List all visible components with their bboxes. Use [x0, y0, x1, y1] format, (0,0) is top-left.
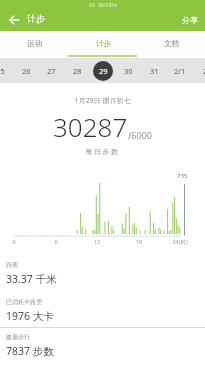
staticText: 运动: [27, 39, 42, 48]
staticText: 30: [124, 66, 133, 76]
staticText: 分享: [182, 15, 198, 25]
staticText: 33.37 千米: [6, 272, 57, 286]
button[interactable]: 计步: [69, 31, 137, 57]
staticText: 1976 大卡: [6, 309, 54, 323]
staticText: 0: [6, 238, 22, 245]
button[interactable]: 分享: [175, 11, 205, 29]
staticText: 计步: [27, 13, 45, 24]
button[interactable]: Back: [4, 10, 24, 30]
staticText: /6000: [128, 129, 152, 141]
button[interactable]: 2: [192, 58, 205, 83]
staticText: 2: [203, 66, 205, 76]
button[interactable]: 运动: [0, 31, 69, 57]
button[interactable]: 已消耗卡路里: [0, 291, 205, 327]
button[interactable]: 2/1: [167, 58, 193, 83]
staticText: 6: [48, 238, 64, 245]
button[interactable]: 27: [38, 58, 64, 83]
button[interactable]: 文档: [137, 31, 205, 57]
staticText: 30287: [53, 109, 128, 144]
button[interactable]: 健康步行: [0, 328, 205, 365]
staticText: 距离: [6, 261, 18, 269]
button[interactable]: 26: [13, 58, 39, 83]
staticText: 12: [89, 238, 105, 245]
staticText: 27: [47, 66, 56, 76]
button[interactable]: 25: [0, 58, 13, 83]
staticText: 25: [0, 66, 5, 76]
button[interactable]: 31: [141, 58, 167, 83]
staticText: 29: [99, 66, 108, 76]
staticText: 每日步数: [0, 147, 205, 156]
staticText: 2/1: [174, 66, 186, 76]
staticText: 18: [131, 238, 147, 245]
staticText: 24(时): [172, 238, 188, 246]
staticText: 26: [22, 66, 31, 76]
staticText: 28: [73, 66, 82, 76]
button[interactable]: 30: [115, 58, 141, 83]
staticText: 735: [177, 172, 188, 180]
staticText: 31: [150, 66, 159, 76]
staticText: 计步: [96, 39, 111, 48]
button[interactable]: 28: [64, 58, 90, 83]
staticText: 健康步行: [6, 333, 30, 341]
staticText: 61 5G1K/s: [89, 1, 117, 8]
button[interactable]: 29: [90, 58, 116, 83]
staticText: 7837 步数: [6, 344, 54, 358]
staticText: 已消耗卡路里: [6, 298, 42, 306]
button[interactable]: 距离: [0, 255, 205, 291]
staticText: 文档: [164, 39, 179, 48]
staticText: 1月29日 腊月初七: [0, 96, 205, 106]
